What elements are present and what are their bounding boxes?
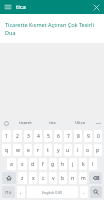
staticText: x (32, 175, 35, 182)
staticText: e (27, 147, 30, 154)
staticText: f (42, 161, 44, 168)
button[interactable]: t (44, 144, 52, 156)
button[interactable]: l (89, 158, 97, 170)
staticText: g (51, 161, 55, 168)
staticText: l (92, 161, 94, 168)
staticText: d (31, 161, 35, 168)
button[interactable]: u (64, 144, 72, 156)
button[interactable]: Clear search (91, 2, 101, 12)
button[interactable]: r (34, 144, 42, 156)
staticText: 7 (67, 133, 70, 140)
button[interactable]: tica (16, 3, 26, 11)
button[interactable]: tics (39, 117, 66, 129)
staticText: h (61, 161, 65, 168)
button[interactable]: Shift (2, 172, 16, 184)
staticText: z (21, 175, 24, 182)
button[interactable]: p (94, 144, 102, 156)
button[interactable]: o (84, 144, 92, 156)
staticText: tics (49, 120, 56, 126)
button[interactable]: 5 (44, 130, 52, 142)
button[interactable]: English (UK) (27, 186, 78, 198)
staticText: c (42, 175, 45, 182)
button[interactable]: Backspace (89, 172, 102, 184)
button[interactable]: h (59, 158, 67, 170)
staticText: s (21, 161, 24, 168)
staticText: 8 (77, 133, 80, 140)
button[interactable]: x (29, 172, 37, 184)
button[interactable]: 0 (94, 130, 102, 142)
button[interactable]: z (18, 172, 27, 184)
staticText: 0 (97, 133, 100, 140)
staticText: 4 (37, 133, 40, 140)
staticText: j (72, 161, 74, 168)
staticText: q (5, 147, 9, 154)
staticText: 2 (16, 133, 19, 140)
button[interactable]: c (39, 172, 47, 184)
staticText: b (61, 175, 65, 182)
staticText: u (66, 147, 70, 154)
button[interactable]: 2 (13, 130, 22, 142)
staticText: Ulica (75, 120, 85, 126)
button[interactable]: i (74, 144, 82, 156)
staticText: , (20, 189, 22, 196)
button[interactable]: k (79, 158, 87, 170)
staticText: . (83, 189, 85, 196)
button[interactable]: j (69, 158, 77, 170)
staticText: i (77, 147, 79, 154)
button[interactable]: 3 (24, 130, 32, 142)
button[interactable]: d (29, 158, 37, 170)
staticText: t (47, 147, 49, 154)
staticText: 5 (47, 133, 50, 140)
staticText: y (57, 147, 60, 154)
staticText: p (96, 147, 100, 154)
button[interactable]: Ticarette Kısmet Açtıran Çok Tesirli Dua (0, 14, 104, 43)
staticText: r (37, 147, 40, 154)
button[interactable]: 9 (84, 130, 92, 142)
staticText: ?1① (5, 190, 12, 195)
staticText: 9 (87, 133, 90, 140)
button[interactable]: e (24, 144, 32, 156)
staticText: Ticarette Kısmet Açtıran Çok Tesirli Dua (5, 21, 99, 37)
button[interactable]: . (80, 186, 88, 198)
button[interactable]: Search (90, 186, 102, 198)
button[interactable]: b (59, 172, 67, 184)
staticText: v (52, 175, 55, 182)
staticText: o (86, 147, 90, 154)
button[interactable]: w (13, 144, 22, 156)
button[interactable]: 1 (2, 130, 11, 142)
button[interactable]: v (49, 172, 57, 184)
staticText: 6 (57, 133, 60, 140)
button[interactable]: ticaret (11, 117, 39, 129)
button[interactable]: Google (1, 117, 11, 129)
button[interactable]: Ulica (66, 117, 93, 129)
button[interactable]: n (69, 172, 77, 184)
button[interactable]: g (49, 158, 57, 170)
staticText: n (71, 175, 75, 182)
button[interactable]: s (18, 158, 27, 170)
button[interactable]: 6 (54, 130, 62, 142)
button[interactable]: 4 (34, 130, 42, 142)
button[interactable]: y (54, 144, 62, 156)
staticText: m (81, 175, 86, 182)
staticText: 3 (27, 133, 30, 140)
button[interactable]: q (2, 144, 11, 156)
button[interactable]: ?1① (2, 186, 15, 198)
button[interactable]: More suggestions (93, 117, 103, 129)
button[interactable]: 7 (64, 130, 72, 142)
button[interactable]: 8 (74, 130, 82, 142)
staticText: English (UK) (42, 190, 63, 195)
staticText: k (82, 161, 85, 168)
button[interactable]: Menu (3, 2, 13, 12)
button[interactable]: , (17, 186, 25, 198)
button[interactable]: a (7, 158, 16, 170)
staticText: ticaret (19, 120, 32, 126)
button[interactable]: f (39, 158, 47, 170)
staticText: 1 (5, 133, 8, 140)
staticText: w (16, 147, 20, 154)
button[interactable]: m (79, 172, 87, 184)
staticText: a (10, 161, 13, 168)
